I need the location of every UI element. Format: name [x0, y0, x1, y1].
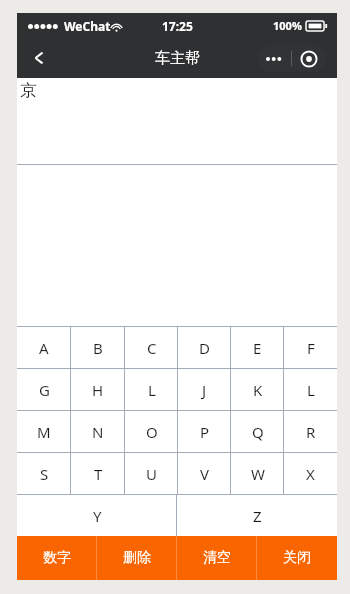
staticText: 清空	[203, 549, 231, 567]
button[interactable]: P	[178, 411, 231, 452]
staticText: K	[253, 380, 263, 400]
button[interactable]: H	[71, 369, 125, 410]
button[interactable]: C	[125, 327, 178, 368]
button[interactable]: W	[231, 453, 284, 494]
staticText: B	[93, 338, 103, 358]
button[interactable]: D	[178, 327, 231, 368]
button[interactable]: R	[284, 411, 337, 452]
staticText: 京	[20, 80, 37, 101]
staticText: 数字	[43, 549, 71, 567]
staticText: 车主帮	[155, 49, 200, 68]
button[interactable]: B	[71, 327, 125, 368]
button[interactable]: 清空	[177, 536, 257, 580]
button[interactable]: N	[71, 411, 125, 452]
staticText: V	[200, 464, 210, 484]
button[interactable]: Q	[231, 411, 284, 452]
staticText: D	[199, 338, 210, 358]
staticText: 17:25	[162, 18, 193, 34]
button[interactable]: O	[125, 411, 178, 452]
staticText: E	[253, 338, 262, 358]
staticText: H	[92, 380, 104, 400]
staticText: W	[251, 464, 265, 484]
staticText: WeChat	[64, 18, 111, 34]
staticText: J	[202, 380, 207, 400]
staticText: S	[40, 464, 49, 484]
staticText: F	[307, 338, 315, 358]
staticText: P	[200, 422, 210, 442]
staticText: U	[146, 464, 157, 484]
staticText: 关闭	[283, 549, 311, 567]
button[interactable]: L	[125, 369, 178, 410]
staticText: 100%	[273, 18, 302, 33]
staticText: T	[94, 464, 103, 484]
staticText: G	[39, 380, 50, 400]
button[interactable]: G	[17, 369, 71, 410]
button[interactable]: T	[71, 453, 125, 494]
button[interactable]: Y	[17, 495, 177, 536]
staticText: X	[306, 464, 315, 484]
staticText: Z	[253, 506, 262, 526]
staticText: L	[148, 380, 156, 400]
button[interactable]: V	[178, 453, 231, 494]
staticText: M	[37, 422, 51, 442]
staticText: O	[146, 422, 158, 442]
button[interactable]: X	[284, 453, 337, 494]
button[interactable]: E	[231, 327, 284, 368]
button[interactable]: J	[178, 369, 231, 410]
staticText: A	[39, 338, 49, 358]
button[interactable]: More options	[258, 45, 291, 72]
staticText: Y	[93, 506, 102, 526]
staticText: Q	[252, 422, 264, 442]
staticText: 删除	[123, 549, 151, 567]
button[interactable]: 关闭	[257, 536, 337, 580]
button[interactable]: M	[17, 411, 71, 452]
staticText: N	[92, 422, 104, 442]
button[interactable]: 数字	[17, 536, 97, 580]
button[interactable]: F	[284, 327, 337, 368]
button[interactable]: 京	[17, 78, 337, 164]
staticText: L	[307, 380, 315, 400]
button[interactable]: Z	[177, 495, 337, 536]
staticText: C	[147, 338, 157, 358]
staticText: R	[306, 422, 316, 442]
button[interactable]: 删除	[97, 536, 177, 580]
button[interactable]: S	[17, 453, 71, 494]
button[interactable]: A	[17, 327, 71, 368]
button[interactable]: Back	[22, 41, 56, 75]
button[interactable]: Close	[292, 45, 326, 72]
button[interactable]: U	[125, 453, 178, 494]
button[interactable]: K	[231, 369, 284, 410]
button[interactable]: L	[284, 369, 337, 410]
